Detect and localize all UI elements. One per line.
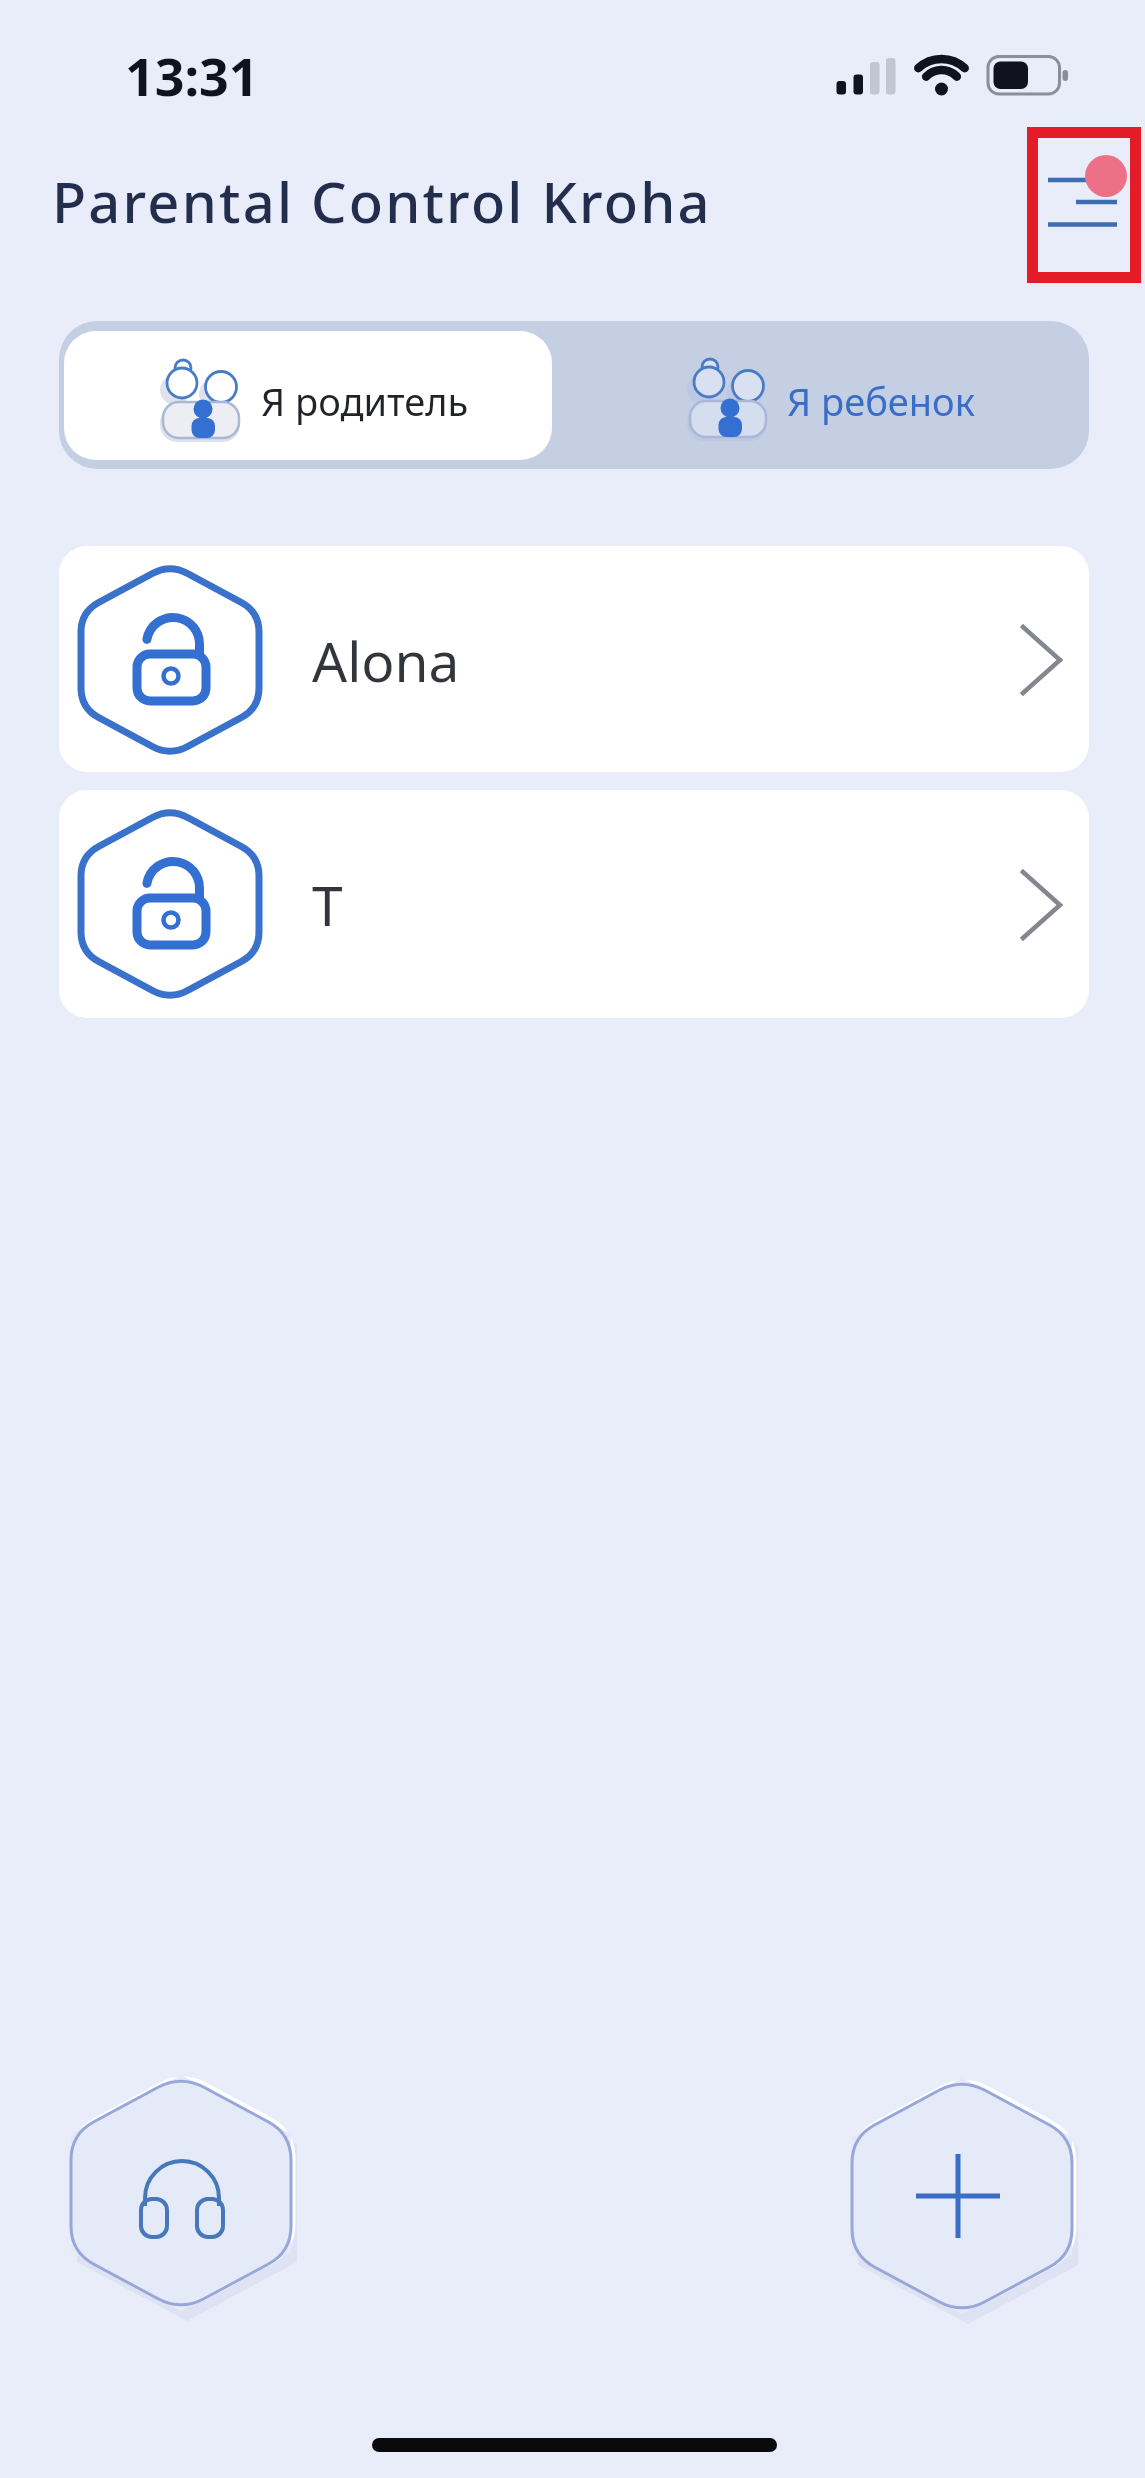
staticText: 13:31	[125, 40, 259, 111]
staticText: Я ребенок	[787, 375, 975, 427]
button[interactable]	[64, 331, 552, 460]
button[interactable]	[570, 321, 1089, 469]
button[interactable]	[71, 2075, 291, 2311]
staticText: Parental Control Kroha	[52, 163, 712, 239]
button[interactable]	[1027, 127, 1141, 283]
staticText: T	[312, 867, 343, 942]
button[interactable]	[59, 546, 1089, 772]
staticText: Я родитель	[261, 375, 469, 427]
button[interactable]	[59, 790, 1089, 1018]
button[interactable]	[852, 2078, 1072, 2314]
staticText: Alona	[312, 623, 460, 698]
